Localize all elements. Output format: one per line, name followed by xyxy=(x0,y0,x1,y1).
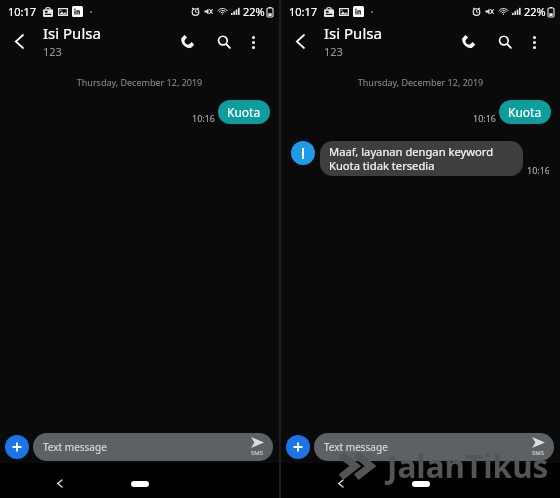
button[interactable]: Kuota xyxy=(218,100,270,124)
staticText: 123 xyxy=(324,44,343,59)
button[interactable]: Kuota xyxy=(499,100,551,124)
staticText: 10:17 xyxy=(8,4,37,19)
staticText: 123 xyxy=(43,44,62,59)
staticText: 22% xyxy=(243,4,265,19)
button[interactable]: Back xyxy=(52,476,67,491)
button[interactable]: Call xyxy=(452,25,485,58)
staticText: 10:16 xyxy=(192,112,216,124)
staticText: JalanTikus xyxy=(387,444,549,487)
button[interactable]: Search xyxy=(488,25,521,58)
staticText: SMS xyxy=(532,449,545,457)
staticText: Isi Pulsa xyxy=(324,23,382,43)
button[interactable]: Navigate up xyxy=(286,27,314,55)
staticText: Isi Pulsa xyxy=(43,23,101,43)
staticText: Thursday, December 12, 2019 xyxy=(281,76,560,88)
button[interactable]: Add attachment xyxy=(5,435,29,459)
button[interactable]: Call xyxy=(171,25,204,58)
button[interactable]: Text message xyxy=(314,433,554,461)
button[interactable]: Navigate up xyxy=(5,27,33,55)
staticText: Kuota xyxy=(227,104,261,120)
button[interactable]: Back xyxy=(333,476,348,491)
staticText: 10:16 xyxy=(473,112,497,124)
button[interactable]: Add attachment xyxy=(286,435,310,459)
staticText: Maaf, layanan dengan keyword Kuota tidak… xyxy=(329,144,494,173)
staticText: 10:16 xyxy=(527,164,549,176)
button[interactable]: Text message xyxy=(33,433,273,461)
button[interactable]: More options xyxy=(240,29,266,55)
staticText: SMS xyxy=(251,449,264,457)
staticText: Text message xyxy=(43,440,107,454)
button[interactable]: More options xyxy=(521,29,547,55)
button[interactable]: Search xyxy=(207,25,240,58)
staticText: 22% xyxy=(524,4,546,19)
button[interactable]: Maaf, layanan dengan keyword Kuota tidak… xyxy=(320,141,523,176)
staticText: Kuota xyxy=(508,104,542,120)
staticText: Text message xyxy=(324,440,388,454)
staticText: Thursday, December 12, 2019 xyxy=(0,76,279,88)
staticText: 10:17 xyxy=(289,4,318,19)
